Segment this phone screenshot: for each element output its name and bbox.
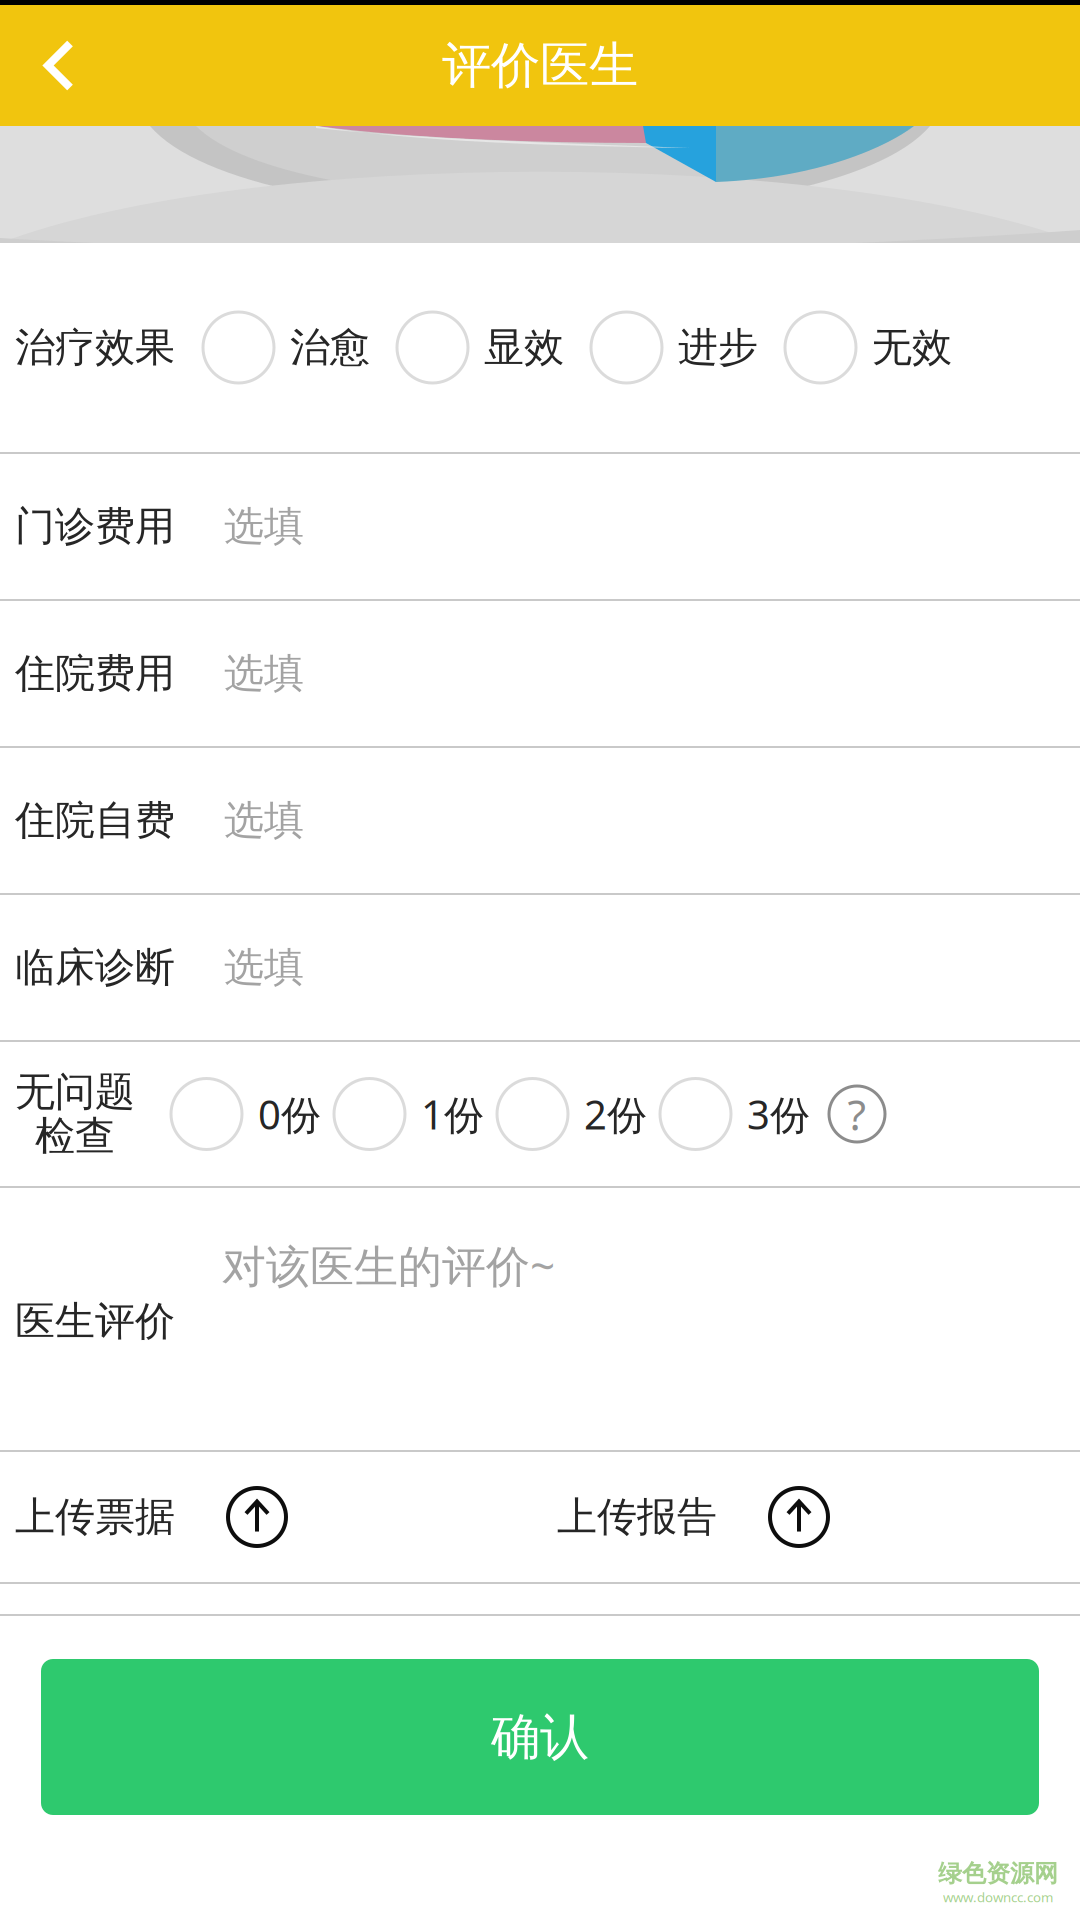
button[interactable]: 2份 [497,1078,660,1149]
button[interactable]: 上传票据 [15,1488,286,1546]
staticText: 1份 [421,1087,484,1140]
button[interactable]: 进步 [591,312,785,383]
staticText: 医生评价 [15,1297,175,1346]
button[interactable]: 1份 [334,1078,497,1149]
button[interactable]: 门诊费用 [0,454,1080,599]
staticText: 上传报告 [557,1492,717,1541]
staticText: 无效 [872,323,952,372]
staticText: 绿色资源网 [938,1859,1058,1888]
button[interactable]: 0份 [171,1078,334,1149]
staticText: www.downcc.com [943,1888,1053,1906]
staticText: 评价医生 [442,35,638,96]
staticText: 门诊费用 [15,502,175,551]
button[interactable]: 治愈 [203,312,397,383]
button[interactable]: 3份 [660,1078,829,1149]
button[interactable]: 上传报告 [557,1488,828,1546]
staticText: 选填 [224,796,304,845]
staticText: 确认 [491,1707,589,1767]
staticText: 住院自费 [15,796,175,845]
staticText: 0份 [258,1087,321,1140]
staticText: 2份 [584,1087,647,1140]
staticText: 无问题 [15,1067,135,1116]
button[interactable]: 临床诊断 [0,895,1080,1040]
staticText: 进步 [678,323,758,372]
button[interactable]: 住院费用 [0,601,1080,746]
staticText: 临床诊断 [15,943,175,992]
staticText: 显效 [484,323,564,372]
staticText: 住院费用 [15,649,175,698]
button[interactable]: 医生评价 [0,1188,1080,1450]
button[interactable]: 显效 [397,312,591,383]
staticText: 上传票据 [15,1492,175,1541]
staticText: 检查 [35,1111,115,1161]
staticText: 治疗效果 [15,323,175,372]
button[interactable]: 确认 [41,1659,1039,1815]
staticText: 3份 [747,1087,810,1140]
button[interactable]: 住院自费 [0,748,1080,893]
button[interactable]: 无效 [785,312,952,383]
staticText: 对该医生的评价~ [222,1236,555,1294]
staticText: 选填 [224,943,304,992]
staticText: 治愈 [290,323,370,372]
staticText: 选填 [224,649,304,698]
staticText: ? [847,1086,866,1142]
button[interactable]: 返回 [0,5,118,126]
button[interactable]: 说明 [829,1086,885,1142]
staticText: 选填 [224,502,304,551]
